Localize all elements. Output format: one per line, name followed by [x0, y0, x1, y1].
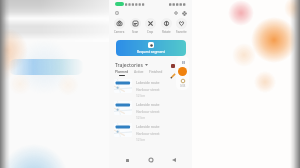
staticText: Harbour street: [136, 109, 160, 114]
staticText: 12 km: [136, 94, 146, 98]
staticText: Rotate: [162, 30, 171, 34]
staticText: Favorite: [176, 30, 187, 34]
button[interactable]: Lakeside route: [114, 121, 187, 143]
staticText: 0:08: [180, 84, 186, 88]
staticText: Harbour street: [136, 131, 160, 136]
staticText: Crop: [147, 30, 154, 34]
button[interactable]: Crop: [143, 18, 158, 34]
staticText: Lakeside route: [136, 124, 160, 129]
staticText: Trajectories: [115, 62, 143, 69]
button[interactable]: Apps: [181, 10, 187, 16]
button[interactable]: Planned: [115, 69, 129, 76]
button[interactable]: Lakeside route: [114, 77, 187, 99]
button[interactable]: Rotate: [159, 18, 174, 34]
button[interactable]: Lakeside route: [114, 99, 187, 121]
button[interactable]: Camera: [112, 18, 127, 34]
staticText: Scan: [132, 30, 139, 34]
button[interactable]: Draw: [170, 73, 176, 79]
staticText: Lakeside route: [136, 102, 160, 107]
staticText: 12 km: [136, 116, 146, 120]
button[interactable]: Search: [173, 10, 179, 16]
button[interactable]: Finished: [149, 69, 163, 74]
staticText: Harbour street: [136, 87, 160, 92]
staticText: Camera: [114, 30, 125, 34]
button[interactable]: Request segment: [116, 40, 186, 56]
button[interactable]: Active: [134, 69, 144, 74]
staticText: 12 km: [136, 138, 146, 142]
button[interactable]: Scan: [128, 18, 143, 34]
button[interactable]: Location: [114, 10, 120, 16]
button[interactable]: Settings: [181, 79, 185, 83]
button[interactable]: Recents: [122, 155, 132, 165]
button[interactable]: Record: [178, 67, 187, 76]
button[interactable]: Favorite: [174, 18, 189, 34]
staticText: Planned: [115, 69, 129, 74]
button[interactable]: Back: [169, 155, 179, 165]
button[interactable]: Home: [146, 155, 156, 165]
button[interactable]: Stop recording: [171, 64, 175, 68]
button[interactable]: Pause: [180, 59, 186, 65]
staticText: Lakeside route: [136, 80, 160, 85]
staticText: Request segment: [137, 49, 165, 54]
